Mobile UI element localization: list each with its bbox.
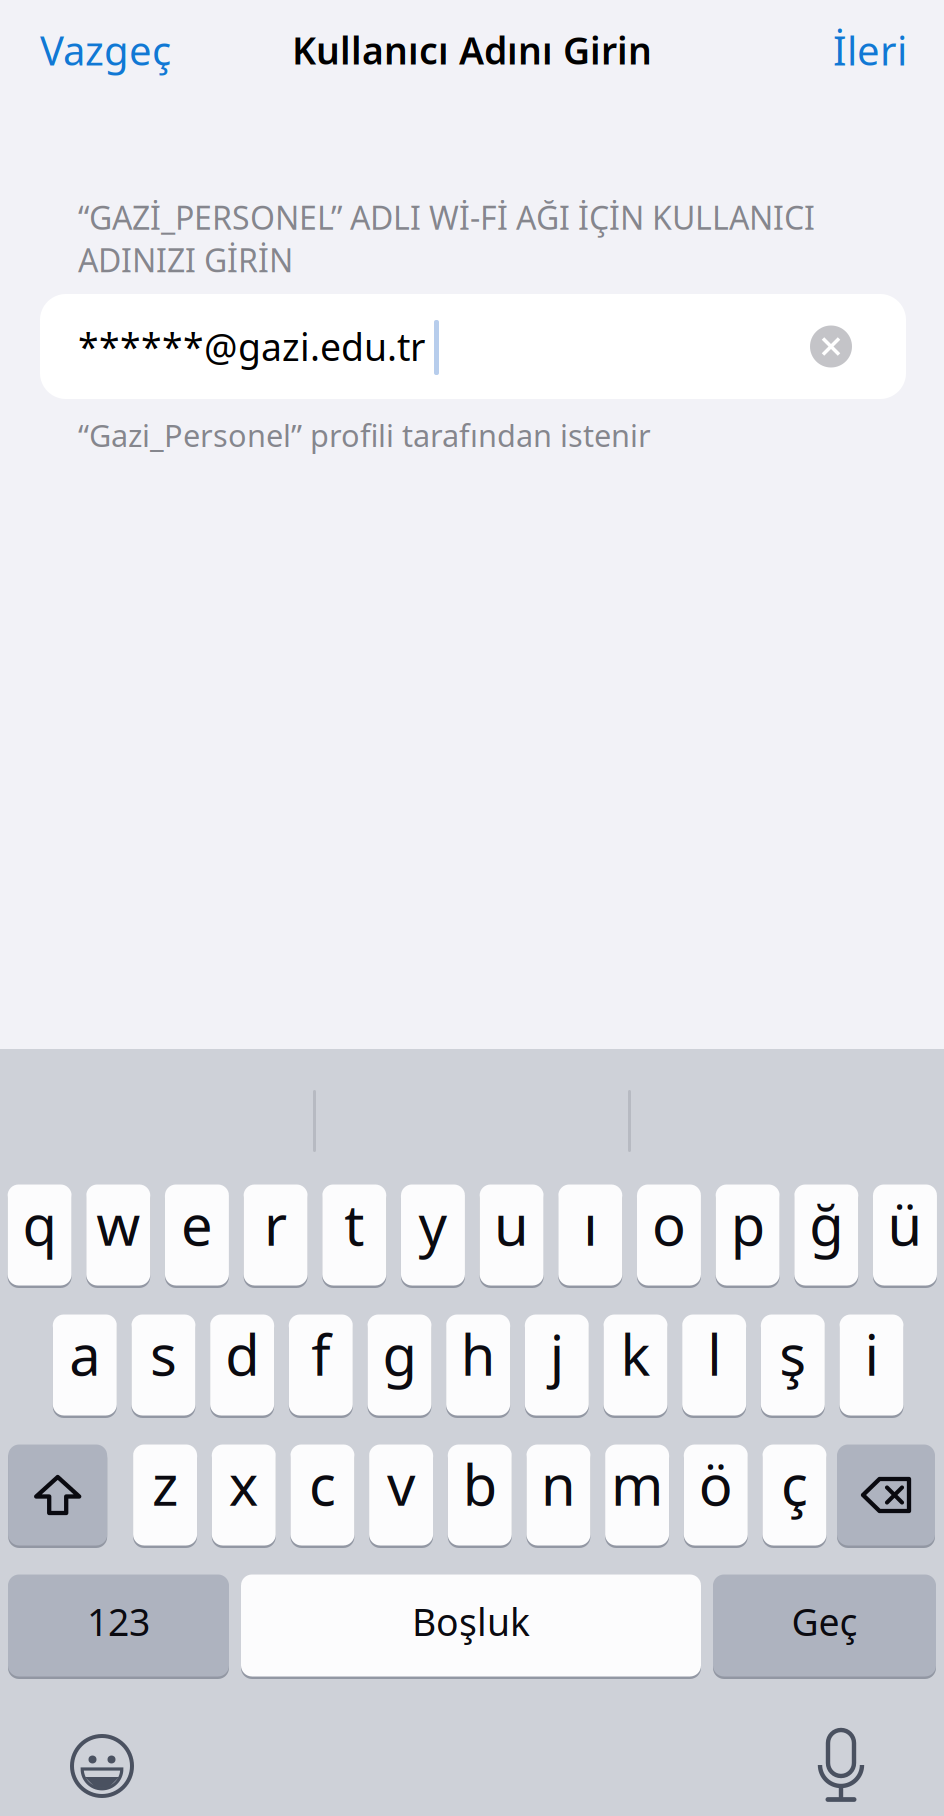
staticText: l: [707, 1317, 721, 1391]
staticText: p: [731, 1187, 765, 1261]
button[interactable]: b: [448, 1443, 512, 1547]
staticText: ç: [781, 1447, 808, 1521]
button[interactable]: o: [637, 1183, 701, 1287]
staticText: c: [309, 1447, 336, 1521]
staticText: u: [494, 1187, 529, 1261]
button[interactable]: t: [322, 1183, 386, 1287]
button[interactable]: k: [603, 1313, 667, 1417]
button[interactable]: Dictation: [813, 1724, 869, 1806]
staticText: m: [611, 1447, 663, 1521]
button[interactable]: Vazgeç: [0, 2, 250, 98]
button[interactable]: Clear text: [803, 318, 859, 374]
button[interactable]: ç: [762, 1443, 826, 1547]
staticText: z: [152, 1447, 178, 1521]
staticText: İleri: [833, 23, 907, 76]
button[interactable]: s: [131, 1313, 195, 1417]
staticText: b: [463, 1447, 497, 1521]
button[interactable]: l: [682, 1313, 746, 1417]
button[interactable]: z: [133, 1443, 197, 1547]
button[interactable]: x: [212, 1443, 276, 1547]
staticText: Boşluk: [412, 1597, 530, 1646]
button[interactable]: Shift: [8, 1443, 107, 1547]
button[interactable]: q: [8, 1183, 72, 1287]
staticText: n: [541, 1447, 576, 1521]
button[interactable]: w: [86, 1183, 150, 1287]
staticText: ö: [699, 1447, 733, 1521]
staticText: x: [229, 1447, 259, 1521]
staticText: Vazgeç: [40, 23, 171, 76]
staticText: q: [23, 1187, 57, 1261]
staticText: Geç: [791, 1597, 857, 1646]
staticText: ü: [887, 1187, 922, 1261]
button[interactable]: Emoji keyboard: [70, 1734, 134, 1798]
staticText: w: [96, 1187, 140, 1261]
button[interactable]: g: [367, 1313, 431, 1417]
button[interactable]: c: [290, 1443, 354, 1547]
staticText: k: [620, 1317, 650, 1391]
staticText: ı: [583, 1187, 597, 1261]
staticText: 123: [87, 1597, 150, 1646]
button[interactable]: e: [165, 1183, 229, 1287]
button[interactable]: d: [210, 1313, 274, 1417]
button[interactable]: İleri: [694, 2, 944, 98]
button[interactable]: Geç: [713, 1573, 936, 1678]
button[interactable]: v: [369, 1443, 433, 1547]
button[interactable]: 123: [8, 1573, 229, 1678]
button[interactable]: Boşluk: [241, 1573, 701, 1678]
staticText: r: [264, 1187, 287, 1261]
button[interactable]: n: [526, 1443, 590, 1547]
button[interactable]: i: [839, 1313, 903, 1417]
staticText: s: [150, 1317, 177, 1391]
staticText: y: [418, 1187, 447, 1261]
staticText: ş: [779, 1317, 806, 1391]
button[interactable]: p: [716, 1183, 780, 1287]
staticText: ******@gazi.edu.tr: [78, 322, 425, 371]
staticText: t: [344, 1187, 364, 1261]
staticText: a: [69, 1317, 100, 1391]
button[interactable]: u: [480, 1183, 544, 1287]
button[interactable]: f: [289, 1313, 353, 1417]
staticText: e: [181, 1187, 213, 1261]
staticText: h: [461, 1317, 496, 1391]
staticText: d: [225, 1317, 259, 1391]
button[interactable]: y: [401, 1183, 465, 1287]
staticText: j: [550, 1317, 564, 1391]
staticText: “Gazi_Personel” profili tarafından isten…: [78, 415, 651, 455]
button[interactable]: a: [53, 1313, 117, 1417]
button[interactable]: j: [525, 1313, 589, 1417]
button[interactable]: ı: [558, 1183, 622, 1287]
button[interactable]: ö: [684, 1443, 748, 1547]
button[interactable]: ş: [761, 1313, 825, 1417]
button[interactable]: ü: [873, 1183, 937, 1287]
staticText: g: [382, 1317, 416, 1391]
staticText: o: [652, 1187, 686, 1261]
staticText: i: [864, 1317, 878, 1391]
button[interactable]: r: [244, 1183, 308, 1287]
button[interactable]: ğ: [794, 1183, 858, 1287]
button[interactable]: m: [605, 1443, 669, 1547]
staticText: v: [387, 1447, 415, 1521]
staticText: ğ: [809, 1187, 843, 1261]
button[interactable]: h: [446, 1313, 510, 1417]
staticText: “GAZİ_PERSONEL” ADLI Wİ-Fİ AĞI İÇİN KULL…: [78, 196, 815, 281]
staticText: f: [311, 1317, 330, 1391]
button[interactable]: Delete: [837, 1443, 935, 1547]
staticText: Kullanıcı Adını Girin: [292, 25, 652, 75]
